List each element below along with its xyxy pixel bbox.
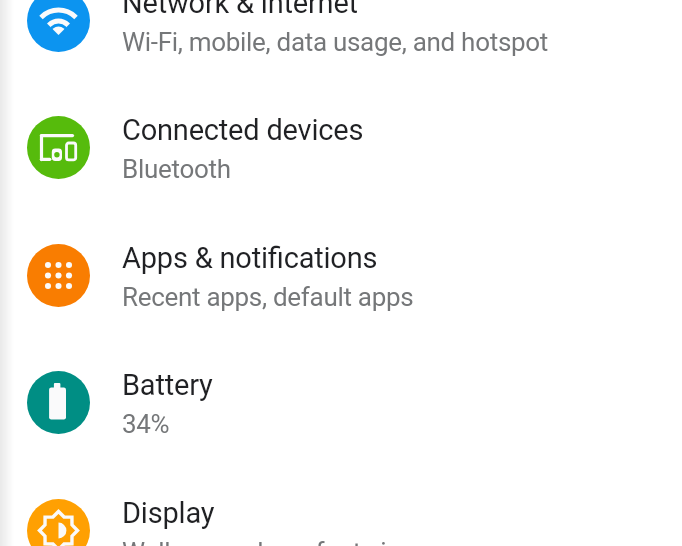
staticText: Display (122, 496, 215, 530)
staticText: Network & internet (122, 0, 358, 20)
staticText: Recent apps, default apps (122, 282, 414, 312)
button[interactable]: Network & internet (0, 0, 682, 84)
staticText: Connected devices (122, 113, 364, 147)
staticText: Wi-Fi, mobile, data usage, and hotspot (122, 27, 549, 57)
staticText: Bluetooth (122, 154, 231, 184)
staticText: Battery (122, 368, 213, 402)
button[interactable]: Apps & notifications (0, 212, 682, 339)
staticText: 34% (122, 409, 170, 439)
button[interactable]: Connected devices (0, 84, 682, 211)
staticText: Wallpaper, sleep, font size (122, 537, 413, 546)
button[interactable]: Battery (0, 339, 682, 466)
button[interactable]: Display (0, 467, 682, 546)
staticText: Apps & notifications (122, 241, 378, 275)
